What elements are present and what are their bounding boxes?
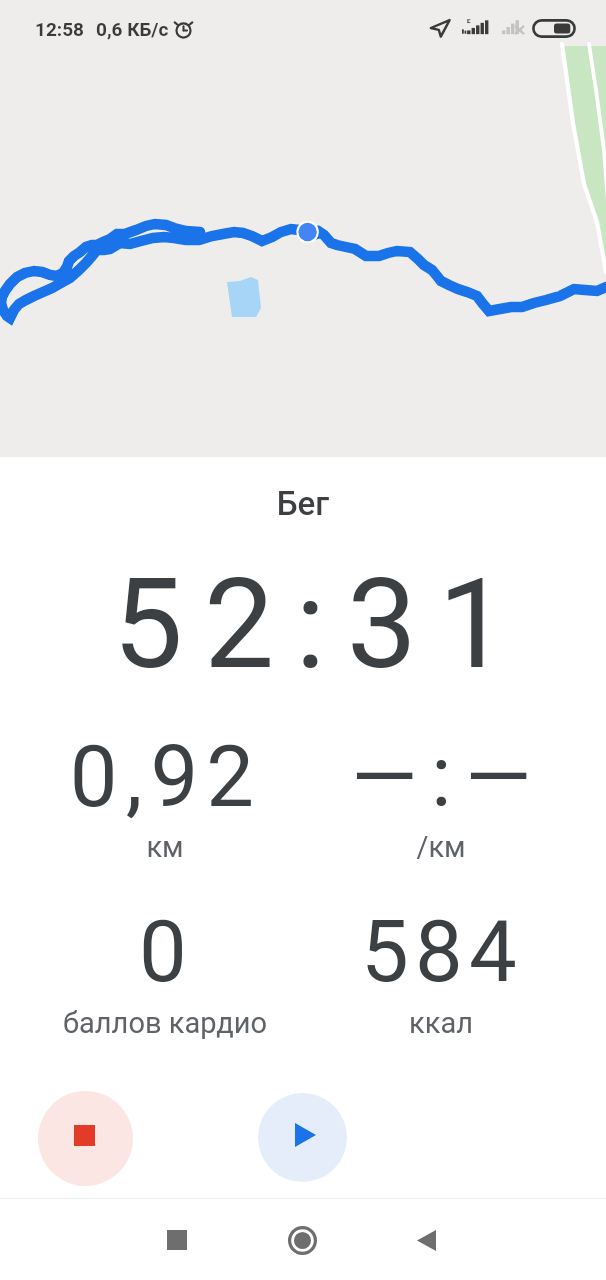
staticText: 12:58 xyxy=(35,18,84,40)
staticText: 52:31 xyxy=(101,551,541,697)
staticText: 584 xyxy=(222,902,606,1002)
staticText: ккал xyxy=(221,1006,606,1040)
button[interactable]: Back xyxy=(396,1210,456,1270)
staticText: /км xyxy=(221,830,606,864)
staticText: баллов кардио xyxy=(0,1006,385,1040)
button[interactable]: Stop workout xyxy=(38,1091,133,1186)
staticText: км xyxy=(0,830,385,864)
button[interactable]: Recents xyxy=(147,1210,207,1270)
staticText: 0,6 КБ/с xyxy=(96,18,169,40)
staticText: Бег xyxy=(83,484,523,523)
staticText: 0,92 xyxy=(0,727,386,827)
button[interactable]: Resume workout xyxy=(258,1093,347,1182)
staticText: 0 xyxy=(0,902,387,1002)
staticText: —:— xyxy=(228,727,606,827)
button[interactable]: Home xyxy=(272,1210,332,1270)
